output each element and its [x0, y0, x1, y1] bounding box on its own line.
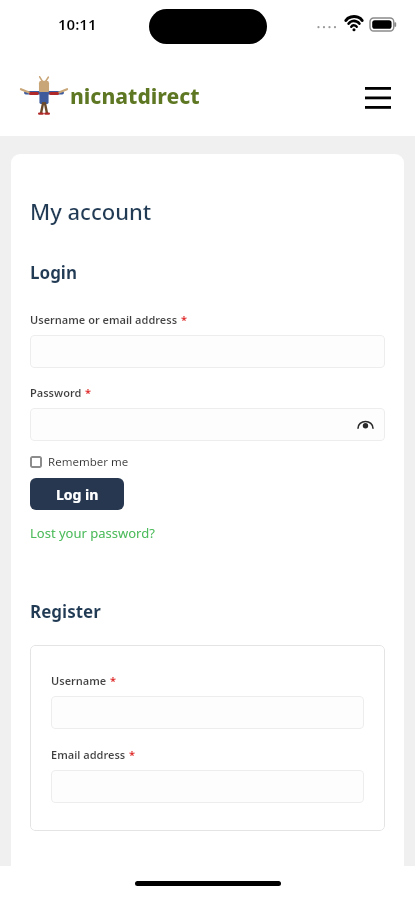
- button[interactable]: Show password: [354, 414, 376, 436]
- staticText: nicnatdirect: [70, 82, 200, 111]
- button[interactable]: nicnatdirect: [20, 76, 200, 116]
- staticText: Log in: [56, 485, 99, 504]
- staticText: Login: [30, 261, 78, 284]
- staticText: Username: [51, 673, 107, 688]
- staticText: *: [129, 747, 135, 762]
- staticText: *: [85, 385, 91, 400]
- staticText: My account: [30, 196, 152, 226]
- staticText: *: [110, 673, 116, 688]
- button[interactable]: [30, 335, 385, 368]
- button[interactable]: Remember me: [30, 454, 129, 470]
- button[interactable]: Log in: [30, 478, 124, 510]
- staticText: Username or email address: [30, 312, 178, 327]
- staticText: Email address: [51, 747, 126, 762]
- staticText: Register: [30, 600, 101, 623]
- button[interactable]: Lost your password?: [30, 524, 155, 542]
- staticText: *: [181, 312, 187, 327]
- staticText: Password: [30, 385, 82, 400]
- button[interactable]: [51, 770, 364, 803]
- staticText: 10:11: [58, 14, 97, 34]
- staticText: Remember me: [48, 454, 129, 470]
- button[interactable]: [51, 696, 364, 729]
- button[interactable]: Show password: [30, 408, 385, 441]
- button[interactable]: Open menu: [355, 73, 401, 119]
